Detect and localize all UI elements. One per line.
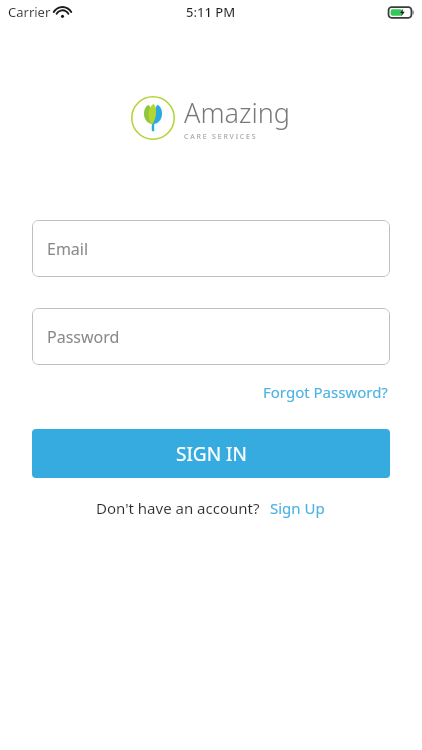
button[interactable]: Password — [32, 308, 390, 365]
staticText: Sign Up — [270, 498, 325, 518]
button[interactable]: SIGN IN — [32, 429, 390, 478]
staticText: Forgot Password? — [263, 382, 388, 402]
button[interactable]: Forgot Password? — [261, 379, 390, 405]
staticText: Carrier — [8, 3, 51, 21]
staticText: Email — [47, 238, 89, 260]
button[interactable]: Email — [32, 220, 390, 277]
staticText: C A R E S E R V I C E S — [184, 132, 256, 142]
other: Wi-Fi — [55, 7, 70, 18]
staticText: 5:11 PM — [186, 3, 236, 21]
staticText: Amazing — [184, 94, 291, 131]
staticText: SIGN IN — [176, 441, 247, 467]
other: Battery charging — [388, 6, 414, 19]
staticText: Password — [47, 326, 120, 348]
staticText: Don't have an account? — [96, 498, 260, 518]
button[interactable]: Sign Up — [268, 495, 327, 521]
